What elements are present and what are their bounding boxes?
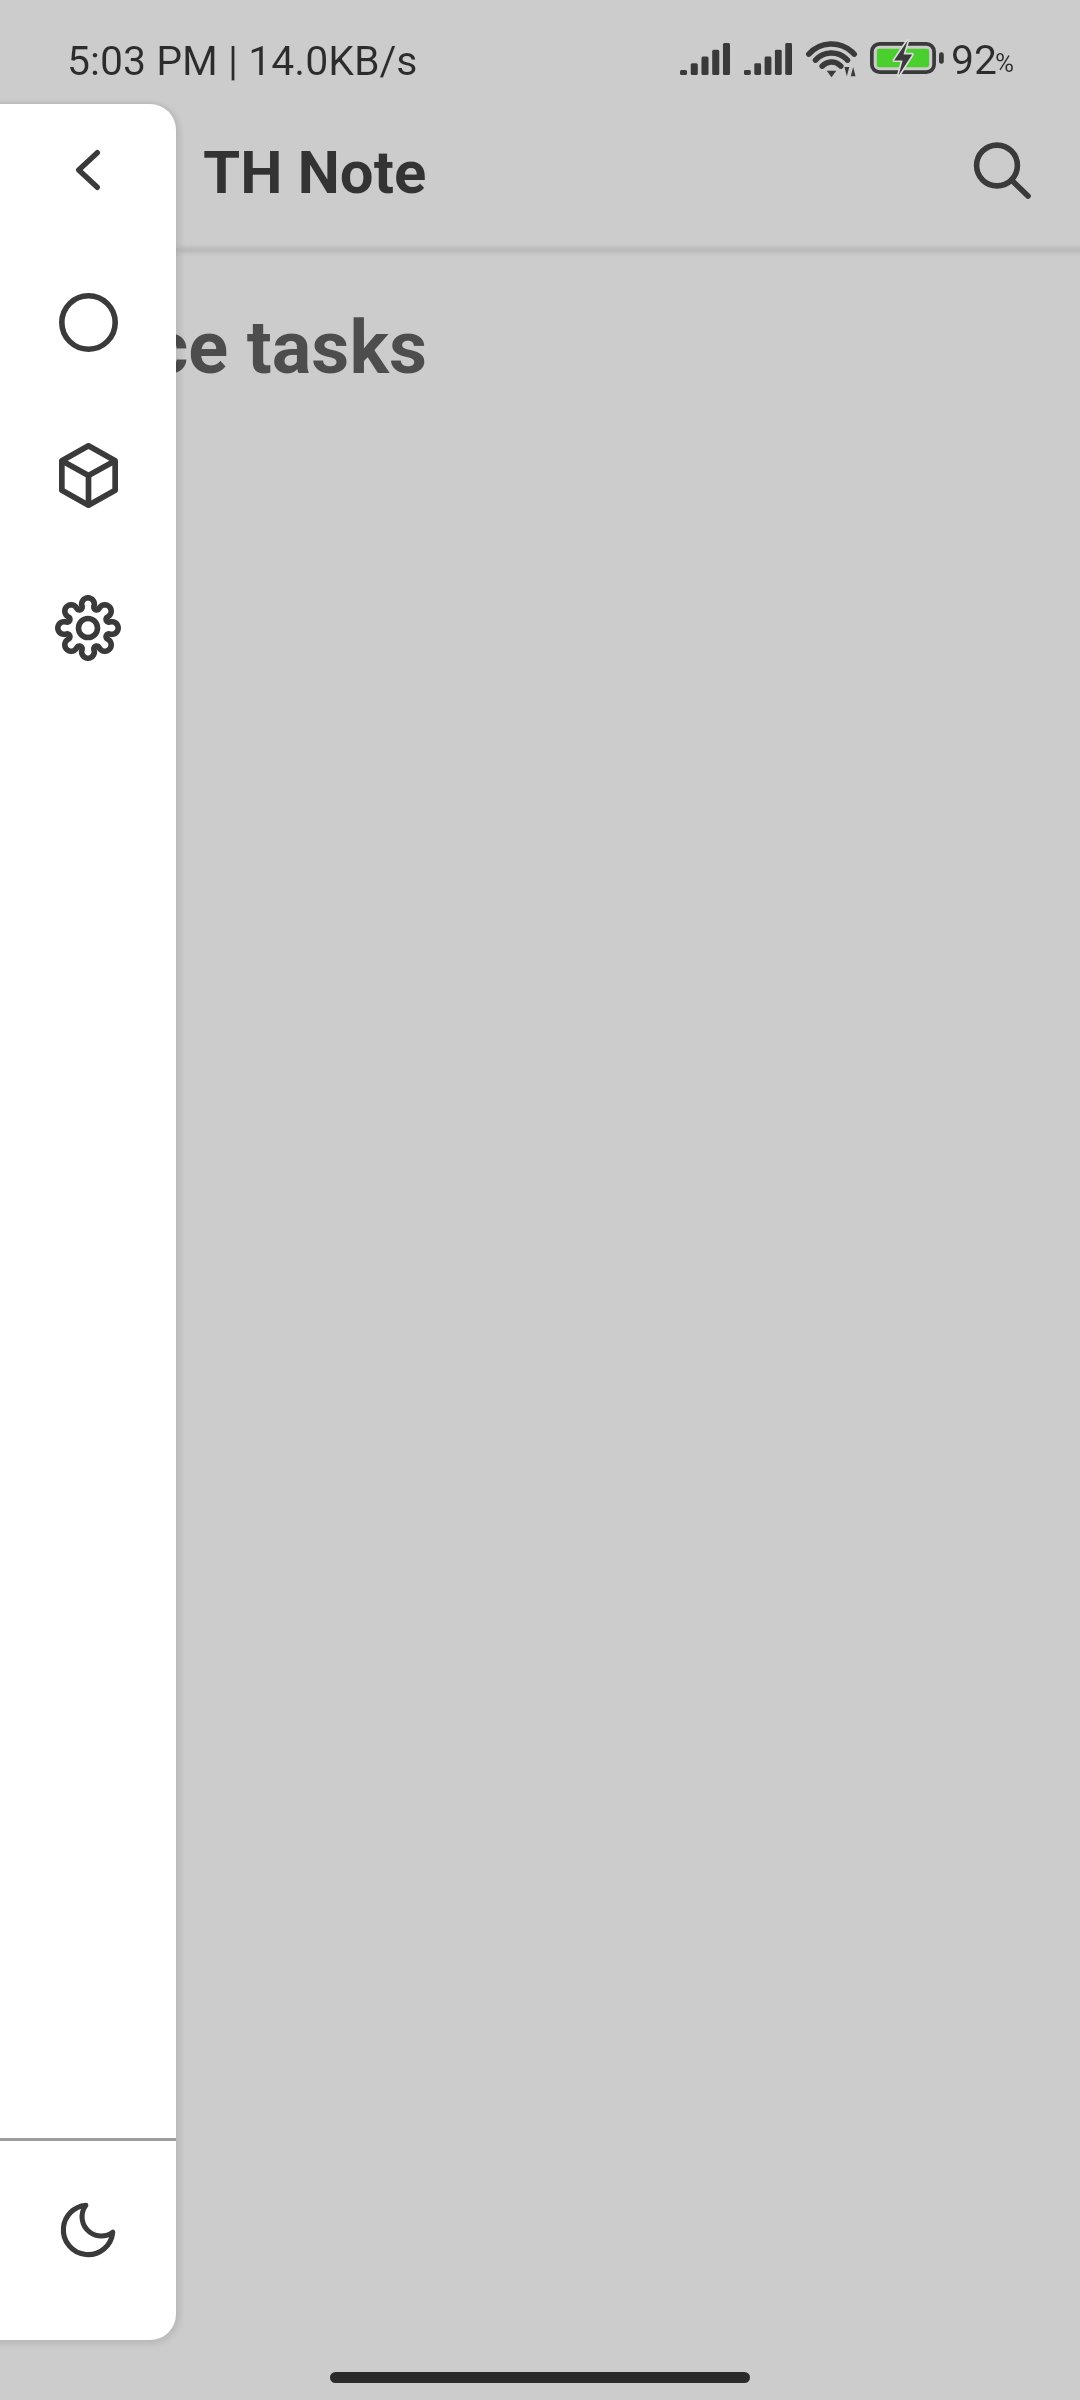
button[interactable]: Search <box>947 117 1057 227</box>
staticText: 92 <box>951 36 998 84</box>
button[interactable]: Dark mode <box>0 2162 176 2298</box>
button[interactable]: Back <box>0 104 176 238</box>
button[interactable]: Archive <box>0 407 176 543</box>
button[interactable]: Settings <box>0 560 176 696</box>
staticText: 5:03 PM | 14.0KB/s <box>67 37 418 85</box>
staticText: TH Note <box>203 137 427 207</box>
staticText: Office tasks <box>30 304 427 391</box>
button[interactable]: Notes <box>0 254 176 390</box>
staticText: % <box>995 48 1015 78</box>
